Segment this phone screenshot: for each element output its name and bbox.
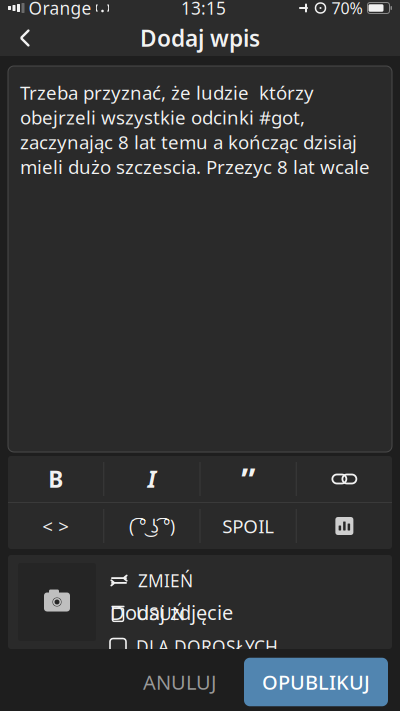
staticText: ZMIEŃ xyxy=(138,569,193,592)
button[interactable]: B xyxy=(8,456,103,502)
button[interactable]: Dodaj zdjęcie xyxy=(18,563,96,641)
button[interactable]: OPUBLIKUJ xyxy=(244,658,388,706)
staticText: < > xyxy=(42,514,69,538)
staticText: 13:15 xyxy=(181,0,226,19)
button[interactable]: Wstecz xyxy=(0,20,50,56)
staticText: Dodaj wpis xyxy=(140,23,260,53)
staticText: DLA DOROSŁYCH xyxy=(136,635,278,658)
button[interactable]: ( ͡° ͜ʖ ͡°) xyxy=(104,503,199,549)
staticText: Orange xyxy=(28,0,91,19)
button[interactable]: I xyxy=(104,456,199,502)
staticText: ( ͡° ͜ʖ ͡°) xyxy=(129,514,175,537)
staticText: OPUBLIKUJ xyxy=(262,669,370,695)
staticText: 70% xyxy=(331,0,362,19)
button[interactable]: ” xyxy=(200,456,296,502)
button[interactable]: DLA DOROSŁYCH xyxy=(110,635,278,658)
staticText: ANULUJ xyxy=(143,669,216,695)
button[interactable]: ANULUJ xyxy=(129,659,230,705)
button[interactable] xyxy=(297,456,392,502)
button[interactable]: SPOIL xyxy=(200,503,296,549)
staticText: Trzeba przyznać, że ludzie którzy obejrz… xyxy=(20,80,370,179)
staticText: Dodaj zdjęcie xyxy=(110,599,233,626)
staticText: B xyxy=(48,464,63,494)
button[interactable] xyxy=(297,503,392,549)
staticText: SPOIL xyxy=(222,514,274,538)
button[interactable]: USUŃ xyxy=(110,602,185,625)
staticText: I xyxy=(147,464,156,494)
button[interactable]: < > xyxy=(8,503,103,549)
staticText: USUŃ xyxy=(136,602,185,625)
staticText: ” xyxy=(241,458,255,500)
button[interactable]: ZMIEŃ xyxy=(110,569,193,592)
